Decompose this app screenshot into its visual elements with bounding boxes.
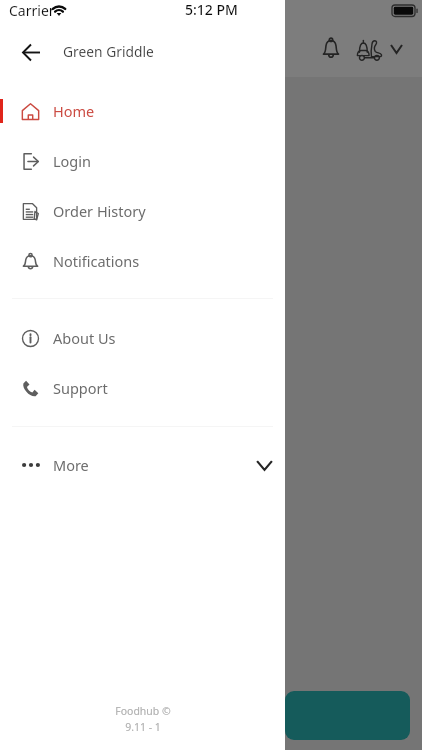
staticText: Login: [53, 151, 91, 171]
staticText: Green Griddle: [63, 42, 154, 61]
staticText: About Us: [53, 328, 116, 348]
staticText: 5:12 PM: [185, 0, 238, 19]
button[interactable]: [285, 691, 410, 740]
staticText: Foodhub ©: [115, 704, 171, 718]
staticText: Support: [53, 378, 108, 398]
button[interactable]: Expand: [386, 33, 414, 61]
button[interactable]: Notifications: [0, 236, 285, 286]
button[interactable]: More: [0, 440, 285, 490]
staticText: Carrier: [9, 1, 55, 20]
staticText: 9.11 - 1: [125, 720, 161, 734]
button[interactable]: Login: [0, 136, 285, 186]
button[interactable]: Delivery: [349, 30, 383, 64]
button[interactable]: Notifications: [313, 30, 347, 64]
button[interactable]: About Us: [0, 313, 285, 363]
staticText: Home: [53, 101, 95, 121]
button[interactable]: Order History: [0, 186, 285, 236]
button[interactable]: Back: [9, 31, 52, 74]
staticText: More: [53, 455, 89, 475]
button[interactable]: Support: [0, 363, 285, 413]
button[interactable]: Home: [0, 86, 285, 136]
staticText: Order History: [53, 201, 146, 221]
staticText: Notifications: [53, 251, 140, 271]
